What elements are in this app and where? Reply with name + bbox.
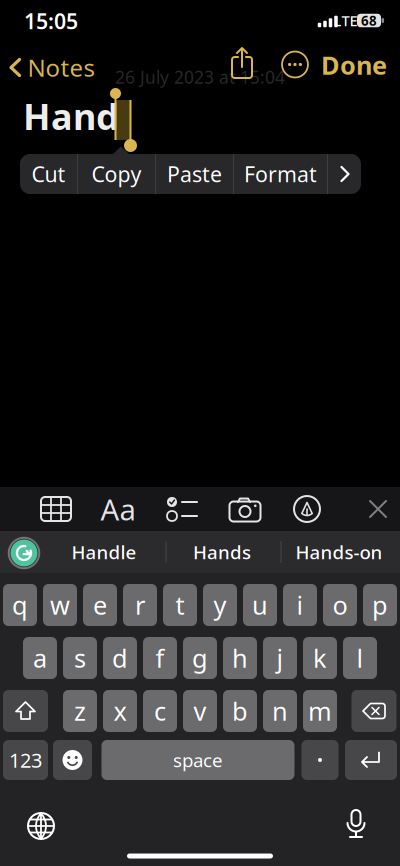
staticText: u: [252, 588, 268, 622]
staticText: Copy: [91, 160, 141, 188]
staticText: d: [112, 641, 128, 675]
button[interactable]: Next keyboard: [27, 812, 55, 840]
staticText: Hands-on: [295, 540, 382, 564]
button[interactable]: t: [163, 584, 197, 626]
staticText: t: [175, 588, 184, 622]
button[interactable]: Notes: [9, 52, 94, 83]
staticText: Handle: [71, 540, 136, 564]
button[interactable]: Formatting: [100, 489, 135, 528]
staticText: h: [232, 641, 248, 675]
staticText: a: [33, 641, 47, 675]
staticText: s: [74, 641, 86, 675]
button[interactable]: v: [183, 690, 217, 732]
button[interactable]: Done: [321, 48, 387, 82]
staticText: space: [173, 748, 223, 772]
button[interactable]: Copy: [78, 154, 155, 194]
button[interactable]: Handle: [71, 531, 136, 573]
staticText: x: [113, 694, 126, 728]
button[interactable]: Share: [227, 45, 257, 81]
staticText: y: [213, 588, 226, 622]
staticText: 26 July 2023 at 15:04: [115, 65, 285, 88]
staticText: n: [272, 694, 288, 728]
staticText: Hands: [193, 540, 251, 564]
staticText: q: [12, 588, 28, 622]
staticText: v: [193, 694, 206, 728]
button[interactable]: Shift: [3, 690, 48, 732]
button[interactable]: x: [103, 690, 137, 732]
staticText: Aa: [100, 489, 135, 528]
staticText: 123: [9, 747, 42, 773]
staticText: Done: [321, 48, 387, 82]
button[interactable]: Paste: [156, 154, 233, 194]
button[interactable]: h: [223, 637, 257, 679]
staticText: Hand: [23, 92, 119, 140]
button[interactable]: Markup: [293, 495, 321, 523]
button[interactable]: w: [43, 584, 77, 626]
staticText: w: [50, 588, 70, 622]
button[interactable]: a: [23, 637, 57, 679]
button[interactable]: b: [223, 690, 257, 732]
staticText: 15:05: [24, 7, 78, 35]
button[interactable]: Cut: [20, 154, 77, 194]
button[interactable]: Hands: [193, 531, 251, 573]
staticText: k: [313, 641, 327, 675]
staticText: Format: [244, 160, 317, 188]
staticText: l: [356, 641, 363, 675]
staticText: m: [308, 694, 332, 728]
button[interactable]: o: [323, 584, 357, 626]
staticText: b: [232, 694, 248, 728]
button[interactable]: Insert table: [39, 495, 73, 523]
button[interactable]: Grammarly: [8, 537, 40, 569]
button[interactable]: f: [143, 637, 177, 679]
button[interactable]: Emoji: [53, 740, 92, 780]
button[interactable]: g: [183, 637, 217, 679]
button[interactable]: i: [283, 584, 317, 626]
staticText: g: [192, 641, 208, 675]
staticText: LTE: [333, 11, 357, 30]
button[interactable]: Dismiss keyboard: [369, 500, 387, 518]
button[interactable]: u: [243, 584, 277, 626]
button[interactable]: More: [281, 50, 309, 78]
button[interactable]: q: [3, 584, 37, 626]
staticText: j: [276, 641, 283, 675]
button[interactable]: Dictate: [344, 810, 368, 840]
staticText: i: [296, 588, 303, 622]
button[interactable]: k: [303, 637, 337, 679]
button[interactable]: Delete: [351, 690, 396, 732]
staticText: Cut: [31, 160, 65, 188]
button[interactable]: 123: [3, 740, 48, 780]
staticText: c: [154, 694, 166, 728]
button[interactable]: More menu items: [328, 154, 361, 194]
button[interactable]: Format: [234, 154, 327, 194]
button[interactable]: j: [263, 637, 297, 679]
button[interactable]: Period: [301, 740, 338, 780]
button[interactable]: Checklist: [166, 495, 200, 522]
staticText: z: [74, 694, 86, 728]
staticText: Paste: [167, 160, 222, 188]
staticText: r: [135, 588, 145, 622]
staticText: Notes: [27, 52, 94, 83]
button[interactable]: Hands-on: [295, 531, 382, 573]
button[interactable]: n: [263, 690, 297, 732]
button[interactable]: Insert photo: [227, 494, 263, 524]
button[interactable]: p: [363, 584, 397, 626]
button[interactable]: l: [343, 637, 377, 679]
button[interactable]: c: [143, 690, 177, 732]
button[interactable]: space: [101, 740, 294, 780]
button[interactable]: s: [63, 637, 97, 679]
button[interactable]: Return: [345, 740, 397, 780]
button[interactable]: y: [203, 584, 237, 626]
button[interactable]: r: [123, 584, 157, 626]
button[interactable]: m: [303, 690, 337, 732]
staticText: 68: [361, 12, 377, 29]
button[interactable]: d: [103, 637, 137, 679]
staticText: f: [155, 641, 164, 675]
button[interactable]: e: [83, 584, 117, 626]
button[interactable]: z: [63, 690, 97, 732]
staticText: e: [93, 588, 107, 622]
staticText: o: [332, 588, 347, 622]
staticText: p: [372, 588, 388, 622]
